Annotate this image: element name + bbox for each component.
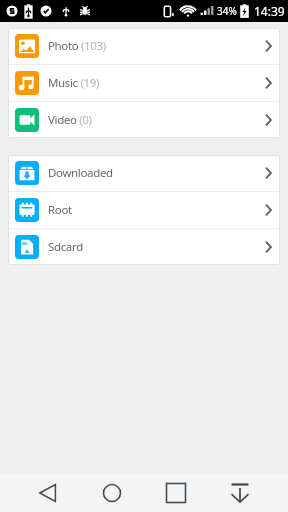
staticText: Video (0) xyxy=(48,112,92,128)
button[interactable]: Root xyxy=(8,192,280,228)
button[interactable]: Sdcard xyxy=(8,229,280,265)
button[interactable]: Downloaded xyxy=(8,155,280,191)
button[interactable]: Music (19) xyxy=(8,65,280,101)
staticText: Sdcard xyxy=(48,239,83,255)
button[interactable]: Back xyxy=(16,473,80,512)
staticText: Root xyxy=(48,202,72,218)
staticText: 34% xyxy=(217,4,237,18)
button[interactable]: Hide keyboard xyxy=(208,473,272,512)
staticText: 14:39 xyxy=(254,3,285,19)
button[interactable]: Recents xyxy=(144,473,208,512)
button[interactable]: Photo (103) xyxy=(8,28,280,64)
staticText: Downloaded xyxy=(48,165,113,181)
staticText: Music (19) xyxy=(48,75,100,91)
staticText: Photo (103) xyxy=(48,38,106,54)
button[interactable]: Home xyxy=(80,473,144,512)
button[interactable]: Video (0) xyxy=(8,102,280,138)
